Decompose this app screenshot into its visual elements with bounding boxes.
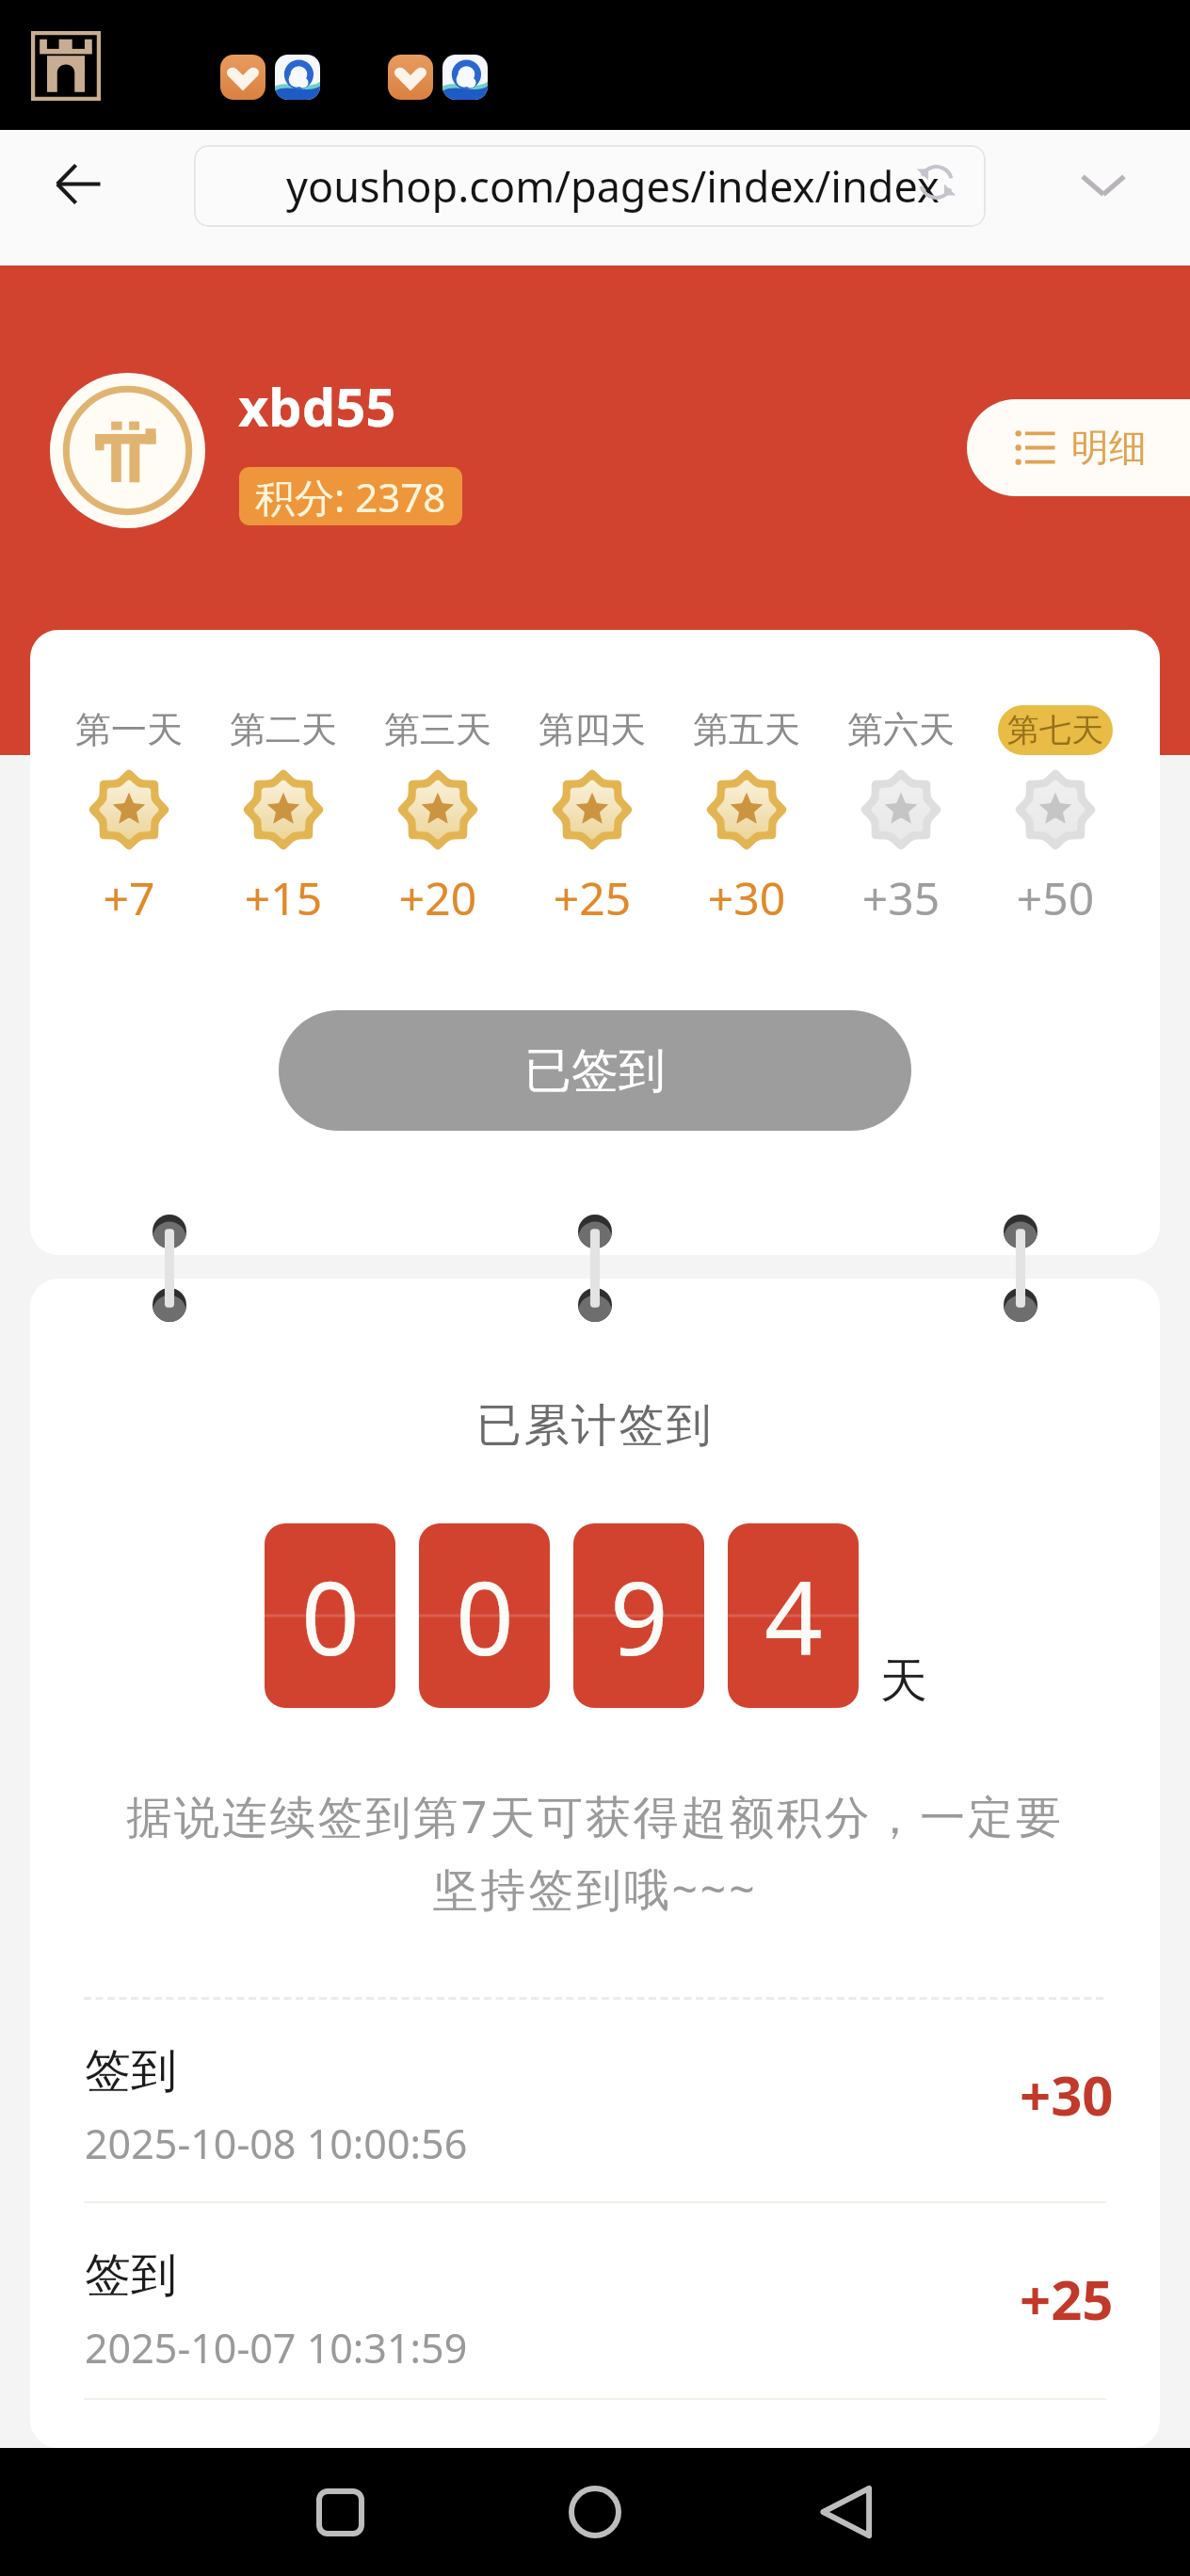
staticText: +30 [1020,2057,1114,2132]
staticText: 第二天 [206,707,361,752]
button[interactable]: Back [801,2467,892,2557]
button[interactable]: 签到 [30,1999,1160,2202]
staticText: 第五天 [669,707,824,752]
staticText: 天 [880,1651,927,1711]
staticText: +25 [515,867,669,928]
staticText: 2025-10-07 10:31:59 [85,2320,468,2375]
staticText: +50 [978,867,1133,928]
staticText: 第一天 [52,707,206,752]
staticText: +30 [669,867,824,928]
staticText: 4 [764,1547,823,1685]
staticText: 第三天 [361,707,515,752]
staticText: 0 [301,1547,360,1685]
staticText: 据说连续签到第7天可获得超额积分，一定要 坚持签到哦~~~ [77,1785,1113,1919]
button[interactable]: 签到 [30,2203,1160,2407]
staticText: 已签到 [524,1041,666,1101]
staticText: +20 [361,867,515,928]
button[interactable]: Back [38,145,119,226]
staticText: 积分: 2378 [255,470,446,523]
staticText: +35 [824,867,978,928]
staticText: 9 [610,1547,668,1685]
button[interactable]: Recent apps [295,2467,385,2557]
button[interactable]: Home [550,2467,640,2557]
staticText: xbd55 [238,370,396,442]
button[interactable]: 明细 [967,399,1190,496]
button[interactable]: 已签到 [279,1010,911,1131]
staticText: 签到 [85,2246,177,2305]
staticText: 第七天 [1007,710,1103,750]
staticText: 2025-10-08 10:00:56 [85,2116,468,2171]
staticText: 签到 [85,2042,177,2101]
staticText: +25 [1020,2262,1114,2336]
button[interactable]: Expand [1063,145,1144,226]
staticText: 第四天 [515,707,669,752]
staticText: +15 [206,867,361,928]
staticText: 明细 [1071,424,1147,471]
staticText: +7 [52,867,206,928]
staticText: youshop.com/pages/index/index [286,157,940,215]
staticText: 第六天 [824,707,978,752]
staticText: 已累计签到 [30,1397,1160,1454]
button[interactable]: youshop.com/pages/index/index [194,145,986,227]
staticText: 0 [456,1547,514,1685]
